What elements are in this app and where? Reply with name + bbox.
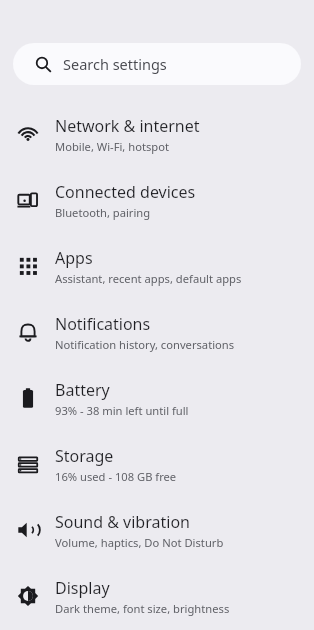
staticText: Apps: [55, 247, 93, 269]
staticText: Battery: [55, 379, 110, 401]
button[interactable]: Sound & vibration: [0, 497, 314, 563]
button[interactable]: Connected devices: [0, 167, 314, 233]
button[interactable]: Search settings: [13, 43, 301, 85]
staticText: Notifications: [55, 313, 151, 335]
staticText: Network & internet: [55, 115, 200, 137]
staticText: Storage: [55, 445, 114, 467]
staticText: Search settings: [63, 54, 167, 74]
staticText: Assistant, recent apps, default apps: [55, 271, 242, 286]
staticText: Display: [55, 577, 110, 599]
button[interactable]: Display: [0, 563, 314, 629]
button[interactable]: Battery: [0, 365, 314, 431]
staticText: 16% used - 108 GB free: [55, 469, 177, 484]
staticText: Bluetooth, pairing: [55, 205, 151, 220]
staticText: Sound & vibration: [55, 511, 190, 533]
button[interactable]: Network & internet: [0, 101, 314, 167]
staticText: Volume, haptics, Do Not Disturb: [55, 535, 224, 550]
button[interactable]: Storage: [0, 431, 314, 497]
staticText: Dark theme, font size, brightness: [55, 601, 230, 616]
staticText: Notification history, conversations: [55, 337, 235, 352]
button[interactable]: Apps: [0, 233, 314, 299]
staticText: Mobile, Wi-Fi, hotspot: [55, 139, 170, 154]
staticText: 93% - 38 min left until full: [55, 403, 189, 418]
staticText: Connected devices: [55, 181, 196, 203]
button[interactable]: Notifications: [0, 299, 314, 365]
